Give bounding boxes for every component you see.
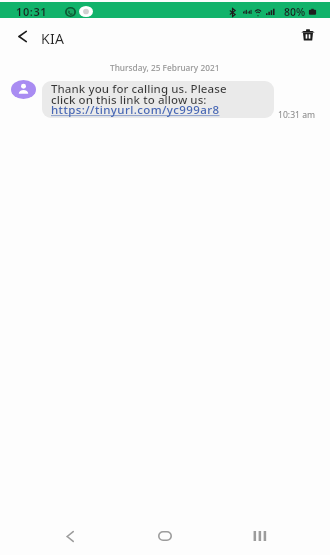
button[interactable]: Thank you for calling us. Please click o… — [42, 81, 274, 118]
staticText: 10:31 — [16, 4, 48, 19]
button[interactable]: Back — [4, 18, 40, 52]
staticText: 10:31 am — [278, 109, 316, 121]
staticText: Thank you for calling us. Please click o… — [51, 81, 227, 118]
button[interactable]: Home — [147, 518, 183, 554]
staticText: KIA — [41, 29, 65, 48]
button[interactable]: Back — [52, 518, 88, 554]
staticText: Thursday, 25 February 2021 — [110, 62, 220, 73]
staticText: 80% — [284, 5, 306, 19]
button[interactable]: Recent apps — [242, 518, 278, 554]
button[interactable]: Delete — [291, 18, 325, 52]
